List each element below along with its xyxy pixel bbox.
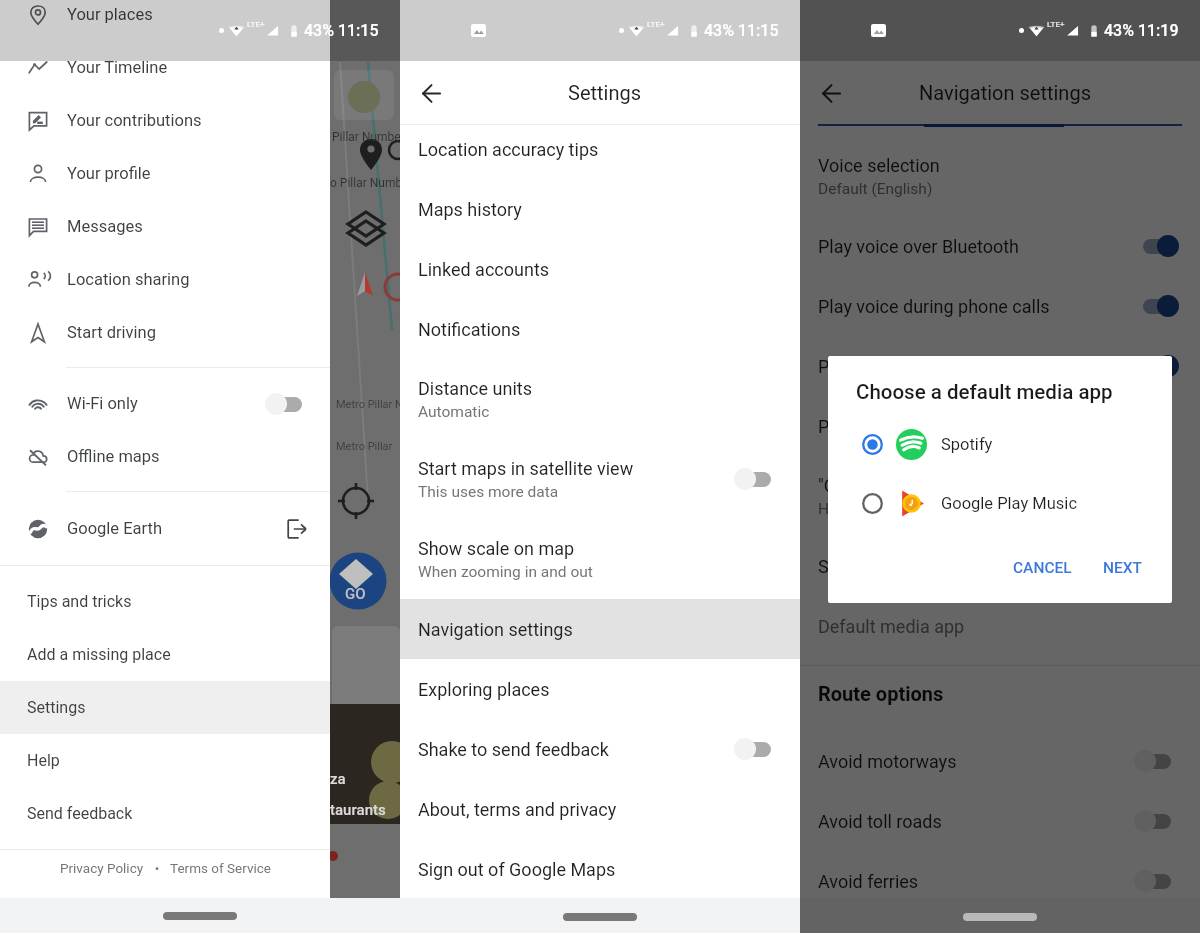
button[interactable]: Your contributions (0, 94, 330, 147)
staticText: Metro Pillar N (336, 398, 403, 411)
staticText: LTE+ (647, 20, 665, 29)
staticText: Choose a default media app (856, 380, 1113, 404)
button[interactable]: Settings (0, 681, 330, 734)
staticText: taurants (330, 801, 386, 819)
staticText: Messages (67, 217, 143, 236)
staticText: Start driving (67, 323, 156, 342)
button[interactable]: Tips and tricks (0, 575, 330, 628)
button[interactable]: Exploring places (400, 659, 800, 719)
button[interactable]: Help (0, 734, 330, 787)
button[interactable]: Terms of Service (166, 856, 275, 880)
button[interactable]: Your profile (0, 147, 330, 200)
staticText: Navigation settings (418, 619, 573, 640)
button[interactable]: Spotify (828, 415, 1172, 474)
button[interactable]: Distance units (400, 359, 800, 439)
button[interactable]: Play voice during phone calls (800, 276, 1200, 336)
staticText: Voice selection (818, 155, 940, 176)
button[interactable]: Start maps in satellite view (400, 439, 800, 519)
button[interactable]: "Ok Google" detection (800, 456, 1200, 536)
button[interactable]: Google Play Music (828, 474, 1172, 533)
staticText: Exploring places (418, 679, 550, 700)
staticText: "Ok Google" detection (818, 475, 992, 496)
button[interactable]: Voice selection (800, 136, 1200, 216)
staticText: NEXT (1103, 559, 1142, 577)
button[interactable]: Avoid toll roads (800, 791, 1200, 851)
staticText: Google Play Music (941, 494, 1078, 513)
staticText: Help (27, 751, 60, 770)
staticText: Play voice at full volume (818, 356, 1012, 377)
staticText: Pillar Number (332, 130, 405, 144)
staticText: About, terms and privacy (418, 799, 617, 820)
staticText: Sign out of Google Maps (418, 859, 616, 880)
staticText: Settings (568, 81, 642, 104)
button[interactable]: Notifications (400, 299, 800, 359)
button[interactable]: NEXT (1093, 551, 1152, 585)
button[interactable]: Play music controls (800, 396, 1200, 456)
button[interactable]: Google Earth (0, 502, 330, 555)
staticText: When zooming in and out (418, 563, 593, 581)
staticText: Play music controls (818, 416, 976, 437)
staticText: Distance units (418, 378, 532, 399)
staticText: Your contributions (67, 111, 202, 130)
staticText: Location sharing (67, 270, 190, 289)
staticText: Metro Pillar (336, 440, 393, 453)
button[interactable]: Navigation settings (400, 599, 800, 659)
button[interactable]: Shake to send feedback (400, 719, 800, 779)
staticText: 43% 11:15 (704, 21, 779, 40)
button[interactable]: Send feedback (0, 787, 330, 840)
staticText: Hands-free use while navigating (818, 500, 1038, 518)
staticText: Your profile (67, 164, 151, 183)
staticText: Offline maps (67, 447, 160, 466)
staticText: Avoid motorways (818, 751, 957, 772)
staticText: Settings (27, 698, 86, 717)
staticText: 43% 11:15 (304, 21, 379, 40)
button[interactable]: Default media app (800, 596, 1200, 656)
staticText: Shake to send feedback (418, 739, 609, 760)
staticText: Spotify (941, 435, 993, 454)
button[interactable]: Your Timeline (0, 41, 330, 94)
button[interactable]: Open Google Earth (284, 516, 310, 542)
button[interactable]: Start driving (0, 306, 330, 359)
staticText: Location accuracy tips (418, 139, 599, 160)
staticText: 43% 11:19 (1104, 21, 1179, 40)
staticText: Avoid toll roads (818, 811, 942, 832)
button[interactable]: CANCEL (1003, 551, 1082, 585)
staticText: Default media app (818, 616, 965, 637)
button[interactable]: Back (807, 69, 855, 117)
staticText: Terms of Service (170, 860, 271, 876)
staticText: LTE+ (1047, 20, 1065, 29)
button[interactable]: Play voice at full volume (800, 336, 1200, 396)
button[interactable]: Your places (0, 0, 330, 41)
staticText: Play voice over Bluetooth (818, 236, 1019, 257)
staticText: LTE+ (247, 20, 265, 29)
staticText: Avoid ferries (818, 871, 919, 892)
button[interactable]: Privacy Policy (56, 856, 148, 880)
button[interactable]: Wi-Fi only (0, 377, 330, 430)
staticText: Send feedback (27, 804, 133, 823)
staticText: Play voice during phone calls (818, 296, 1050, 317)
button[interactable]: Location accuracy tips (400, 119, 800, 179)
staticText: Automatic (418, 403, 490, 421)
button[interactable]: Linked accounts (400, 239, 800, 299)
button[interactable]: Location sharing (0, 253, 330, 306)
button[interactable]: Back (407, 69, 455, 117)
staticText: GO (345, 585, 366, 603)
button[interactable]: Offline maps (0, 430, 330, 483)
button[interactable]: Add a missing place (0, 628, 330, 681)
staticText: Navigation settings (919, 81, 1091, 104)
staticText: Privacy Policy (60, 860, 144, 876)
button[interactable]: About, terms and privacy (400, 779, 800, 839)
button[interactable]: Avoid ferries (800, 851, 1200, 911)
button[interactable]: Messages (0, 200, 330, 253)
staticText: Linked accounts (418, 259, 550, 280)
button[interactable]: Avoid motorways (800, 731, 1200, 791)
staticText: This uses more data (418, 483, 559, 501)
button[interactable]: Play voice over Bluetooth (800, 216, 1200, 276)
staticText: Show scale on map (418, 538, 575, 559)
button[interactable]: Show scale on map (400, 519, 800, 599)
button[interactable]: Sign out of Google Maps (400, 839, 800, 899)
staticText: Notifications (418, 319, 521, 340)
staticText: Wi-Fi only (67, 394, 138, 413)
button[interactable]: Maps history (400, 179, 800, 239)
button[interactable]: Show media playback controls (800, 536, 1200, 596)
